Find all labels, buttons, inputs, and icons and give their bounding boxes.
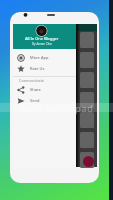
button[interactable]: Share — [13, 84, 76, 95]
staticText: Rate Us — [30, 66, 45, 71]
button[interactable]: Add — [83, 156, 94, 167]
staticText: Communicate — [19, 78, 44, 83]
staticText: By Aman Dev — [32, 42, 52, 46]
button[interactable]: Send — [13, 95, 76, 106]
staticText: More App — [30, 55, 49, 60]
staticText: All In One Blogger — [25, 36, 59, 41]
button[interactable]: More App — [13, 52, 76, 63]
staticText: Share — [30, 87, 41, 92]
button[interactable]: Rate Us — [13, 63, 76, 74]
staticText: AppLaunchpad — [20, 102, 94, 114]
button[interactable] — [80, 152, 94, 168]
staticText: Send — [30, 98, 40, 103]
button[interactable] — [80, 92, 94, 108]
